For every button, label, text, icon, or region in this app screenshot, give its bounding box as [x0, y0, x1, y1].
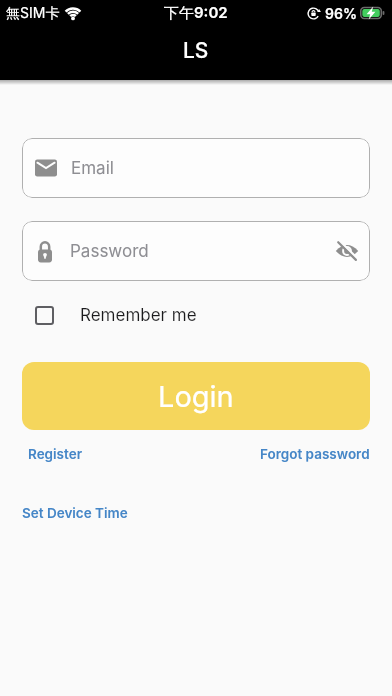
button[interactable]: Login: [22, 362, 370, 430]
button[interactable]: Remember me: [35, 305, 197, 326]
staticText: LS: [183, 38, 209, 63]
staticText: Password: [70, 241, 149, 262]
staticText: 無SIM卡: [6, 4, 60, 22]
staticText: Email: [71, 158, 114, 179]
staticText: Remember me: [80, 305, 197, 326]
button[interactable]: [334, 238, 360, 264]
button[interactable]: Email: [22, 138, 370, 198]
button[interactable]: Forgot password: [260, 446, 370, 462]
button[interactable]: Register: [28, 446, 82, 462]
staticText: 下午9:02: [164, 3, 228, 22]
staticText: Login: [158, 379, 234, 414]
button[interactable]: Password: [22, 221, 370, 281]
staticText: 96%: [325, 5, 357, 22]
button[interactable]: Set Device Time: [22, 505, 128, 521]
